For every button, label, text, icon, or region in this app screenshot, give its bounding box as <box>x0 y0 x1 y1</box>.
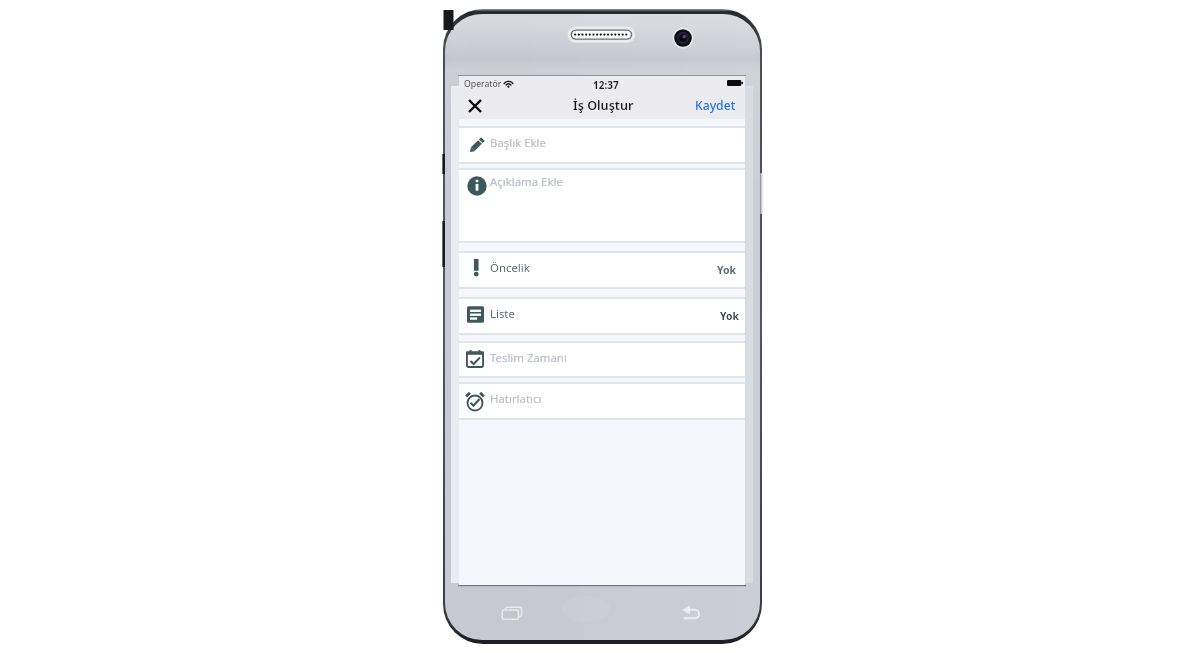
staticText: Başlık Ekle <box>490 135 546 151</box>
staticText: Teslim Zamanı <box>490 350 567 366</box>
button[interactable]: Kaydet <box>686 93 745 117</box>
staticText: Açıklama Ekle <box>490 174 563 190</box>
staticText: İş Oluştur <box>573 97 634 114</box>
button[interactable]: Açıklama Ekle <box>459 170 745 241</box>
staticText: Liste <box>490 306 515 322</box>
button[interactable]: Başlık Ekle <box>459 128 745 162</box>
button[interactable]: Öncelik <box>459 253 745 287</box>
button[interactable]: Teslim Zamanı <box>459 343 745 377</box>
staticText: Kaydet <box>695 97 736 113</box>
button[interactable]: Kapat <box>463 94 486 117</box>
button[interactable]: Hatırlatıcı <box>459 384 745 418</box>
staticText: Operatör <box>464 78 502 90</box>
button[interactable]: Liste <box>459 299 745 333</box>
staticText: Hatırlatıcı <box>490 391 542 407</box>
staticText: Yok <box>720 309 739 323</box>
staticText: 12:37 <box>593 78 619 92</box>
staticText: Öncelik <box>490 260 530 276</box>
staticText: Yok <box>717 263 736 277</box>
